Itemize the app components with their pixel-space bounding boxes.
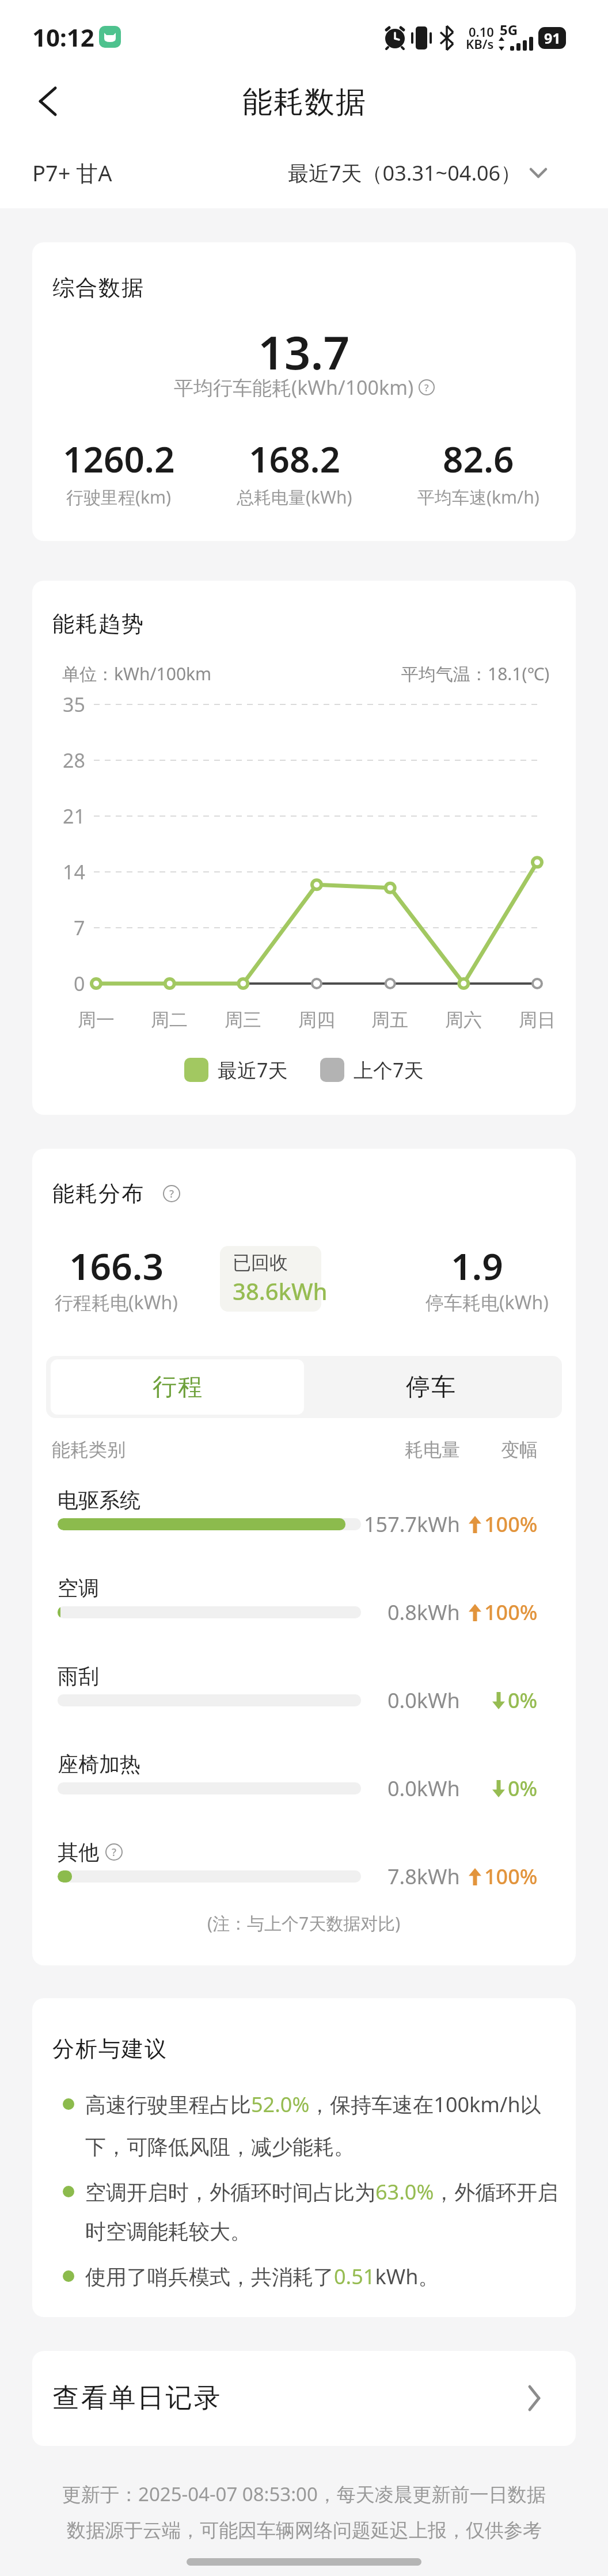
- staticText: 座椅加热: [58, 1751, 140, 1777]
- button[interactable]: 行程: [51, 1359, 304, 1415]
- staticText: 停车耗电(kWh): [425, 1290, 549, 1315]
- staticText: 7: [74, 914, 85, 941]
- staticText: 0.0kWh: [387, 1686, 460, 1714]
- staticText: 7.8kWh: [387, 1862, 460, 1891]
- staticText: 166.3: [69, 1241, 164, 1291]
- staticText: 平均气温：18.1(℃): [401, 662, 550, 685]
- staticText: 能耗分布: [52, 1180, 144, 1207]
- staticText: 电驱系统: [58, 1487, 140, 1513]
- staticText: 0%: [508, 1686, 538, 1714]
- staticText: 14: [63, 859, 85, 885]
- staticText: 1260.2: [63, 435, 175, 483]
- staticText: 13.7: [258, 320, 350, 378]
- staticText: ?: [424, 381, 429, 394]
- staticText: 查看单日记录: [52, 2381, 221, 2415]
- staticText: 空调开启时，外循环时间占比为63.0%，外循环开启: [85, 2178, 558, 2206]
- staticText: 周日: [519, 1008, 556, 1031]
- staticText: 更新于：2025-04-07 08:53:00，每天凌晨更新前一日数据: [62, 2481, 546, 2507]
- staticText: 168.2: [249, 435, 340, 483]
- staticText: P7+ 甘A: [32, 158, 112, 188]
- staticText: 0.10: [469, 23, 494, 40]
- staticText: 停车: [405, 1372, 456, 1403]
- staticText: 总耗电量(kWh): [237, 485, 352, 509]
- staticText: 平均车速(km/h): [417, 485, 539, 509]
- staticText: (注：与上个7天数据对比): [207, 1911, 401, 1935]
- staticText: 使用了哨兵模式，共消耗了0.51kWh。: [85, 2262, 439, 2291]
- staticText: 0: [74, 970, 85, 997]
- staticText: ?: [169, 1187, 174, 1201]
- staticText: 0.0kWh: [387, 1774, 460, 1803]
- staticText: 5G: [500, 20, 518, 39]
- staticText: 行程: [152, 1372, 203, 1403]
- staticText: 下，可降低风阻，减少能耗。: [85, 2134, 355, 2160]
- staticText: 38.6kWh: [233, 1275, 328, 1306]
- staticText: 82.6: [443, 435, 514, 483]
- staticText: 10:12: [32, 21, 94, 54]
- button[interactable]: ?: [105, 1843, 123, 1861]
- staticText: 变幅: [501, 1438, 538, 1461]
- staticText: 高速行驶里程占比52.0%，保持车速在100km/h以: [85, 2090, 541, 2118]
- staticText: 157.7kWh: [364, 1510, 460, 1538]
- staticText: 周五: [371, 1008, 408, 1031]
- staticText: 周一: [78, 1008, 115, 1031]
- staticText: 0%: [508, 1774, 538, 1803]
- staticText: KB/s: [466, 35, 494, 52]
- staticText: 能耗类别: [52, 1438, 126, 1461]
- staticText: 周四: [298, 1008, 335, 1031]
- staticText: 最近7天（03.31~04.06）: [288, 159, 522, 187]
- staticText: 能耗趋势: [52, 610, 144, 638]
- staticText: 平均行车能耗(kWh/100km): [174, 374, 414, 401]
- staticText: 周二: [151, 1008, 188, 1031]
- staticText: 空调: [58, 1575, 99, 1601]
- staticText: 100%: [484, 1862, 538, 1891]
- staticText: 耗电量: [405, 1438, 460, 1461]
- staticText: 周六: [445, 1008, 482, 1031]
- staticText: 综合数据: [52, 274, 144, 302]
- staticText: 91: [544, 28, 561, 48]
- staticText: 数据源于云端，可能因车辆网络问题延迟上报，仅供参考: [67, 2518, 542, 2543]
- button[interactable]: P7+ 甘A: [32, 155, 263, 190]
- button[interactable]: ?: [163, 1185, 180, 1202]
- staticText: 100%: [484, 1598, 538, 1626]
- staticText: 行驶里程(km): [66, 485, 172, 509]
- staticText: 35: [63, 691, 85, 718]
- staticText: 能耗数据: [242, 83, 366, 121]
- staticText: 28: [63, 747, 85, 773]
- button[interactable]: 最近7天（03.31~04.06）: [234, 155, 547, 190]
- staticText: 100%: [484, 1510, 538, 1538]
- staticText: 时空调能耗较大。: [85, 2219, 251, 2245]
- staticText: 分析与建议: [52, 2035, 167, 2063]
- button[interactable]: 停车: [304, 1359, 557, 1415]
- staticText: 已回收: [233, 1251, 288, 1274]
- button[interactable]: 查看单日记录: [32, 2351, 576, 2446]
- staticText: 单位：kWh/100km: [62, 662, 212, 685]
- staticText: 周三: [225, 1008, 261, 1031]
- staticText: 雨刮: [58, 1663, 99, 1689]
- staticText: 21: [63, 803, 85, 829]
- staticText: ?: [112, 1845, 117, 1859]
- staticText: 0.8kWh: [387, 1598, 460, 1626]
- staticText: 最近7天: [218, 1057, 288, 1083]
- staticText: 其他: [58, 1839, 99, 1865]
- button[interactable]: [39, 87, 56, 116]
- staticText: 行程耗电(kWh): [55, 1290, 178, 1315]
- staticText: 1.9: [451, 1241, 503, 1291]
- staticText: 上个7天: [354, 1057, 424, 1083]
